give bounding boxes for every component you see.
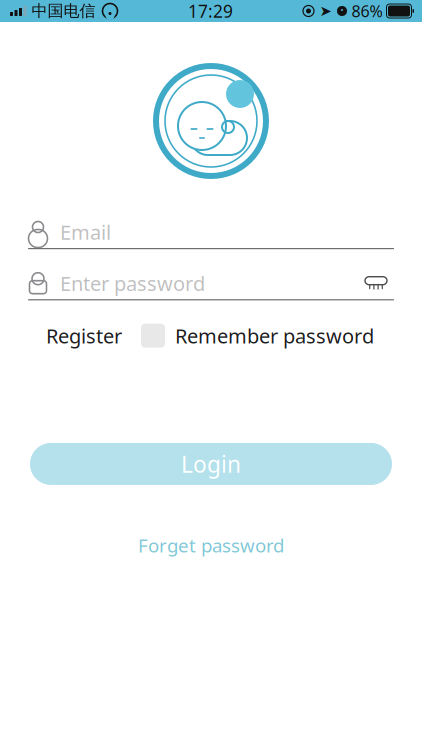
staticText: Register: [46, 322, 122, 349]
staticText: Remember password: [175, 322, 374, 349]
staticText: Email: [60, 219, 111, 245]
staticText: ➤: [319, 3, 331, 19]
button[interactable]: Show password: [358, 268, 394, 298]
staticText: 中国电信: [31, 1, 95, 21]
staticText: 86%: [351, 0, 382, 22]
staticText: Login: [181, 449, 241, 479]
button[interactable]: Login: [30, 443, 392, 485]
staticText: Enter password: [60, 270, 205, 296]
staticText: 17:29: [188, 0, 233, 22]
button[interactable]: Register: [46, 316, 122, 355]
button[interactable]: Forget password: [126, 527, 296, 564]
staticText: Forget password: [138, 533, 284, 558]
button[interactable]: Remember password: [141, 319, 374, 352]
